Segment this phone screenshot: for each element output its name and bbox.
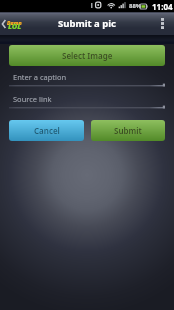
staticText: Cancel [34,125,60,136]
button[interactable]: Home [6,18,23,32]
staticText: Submit a pic [58,17,117,30]
button[interactable]: Cancel [9,120,84,141]
staticText: 88% [129,2,142,10]
staticText: Enter a caption [13,72,67,82]
staticText: LOL [8,21,22,31]
staticText: 11:04 [152,1,173,12]
staticText: Damn [7,19,22,26]
button[interactable]: Navigate up [0,12,7,35]
button[interactable]: Submit [91,120,165,141]
staticText: Submit [114,125,142,136]
button[interactable]: Select Image [9,45,165,66]
staticText: Source link [13,94,52,104]
button[interactable]: More options [157,12,174,35]
button[interactable]: Source link [9,94,165,110]
staticText: Select Image [62,50,113,61]
button[interactable]: Enter a caption [9,72,165,88]
